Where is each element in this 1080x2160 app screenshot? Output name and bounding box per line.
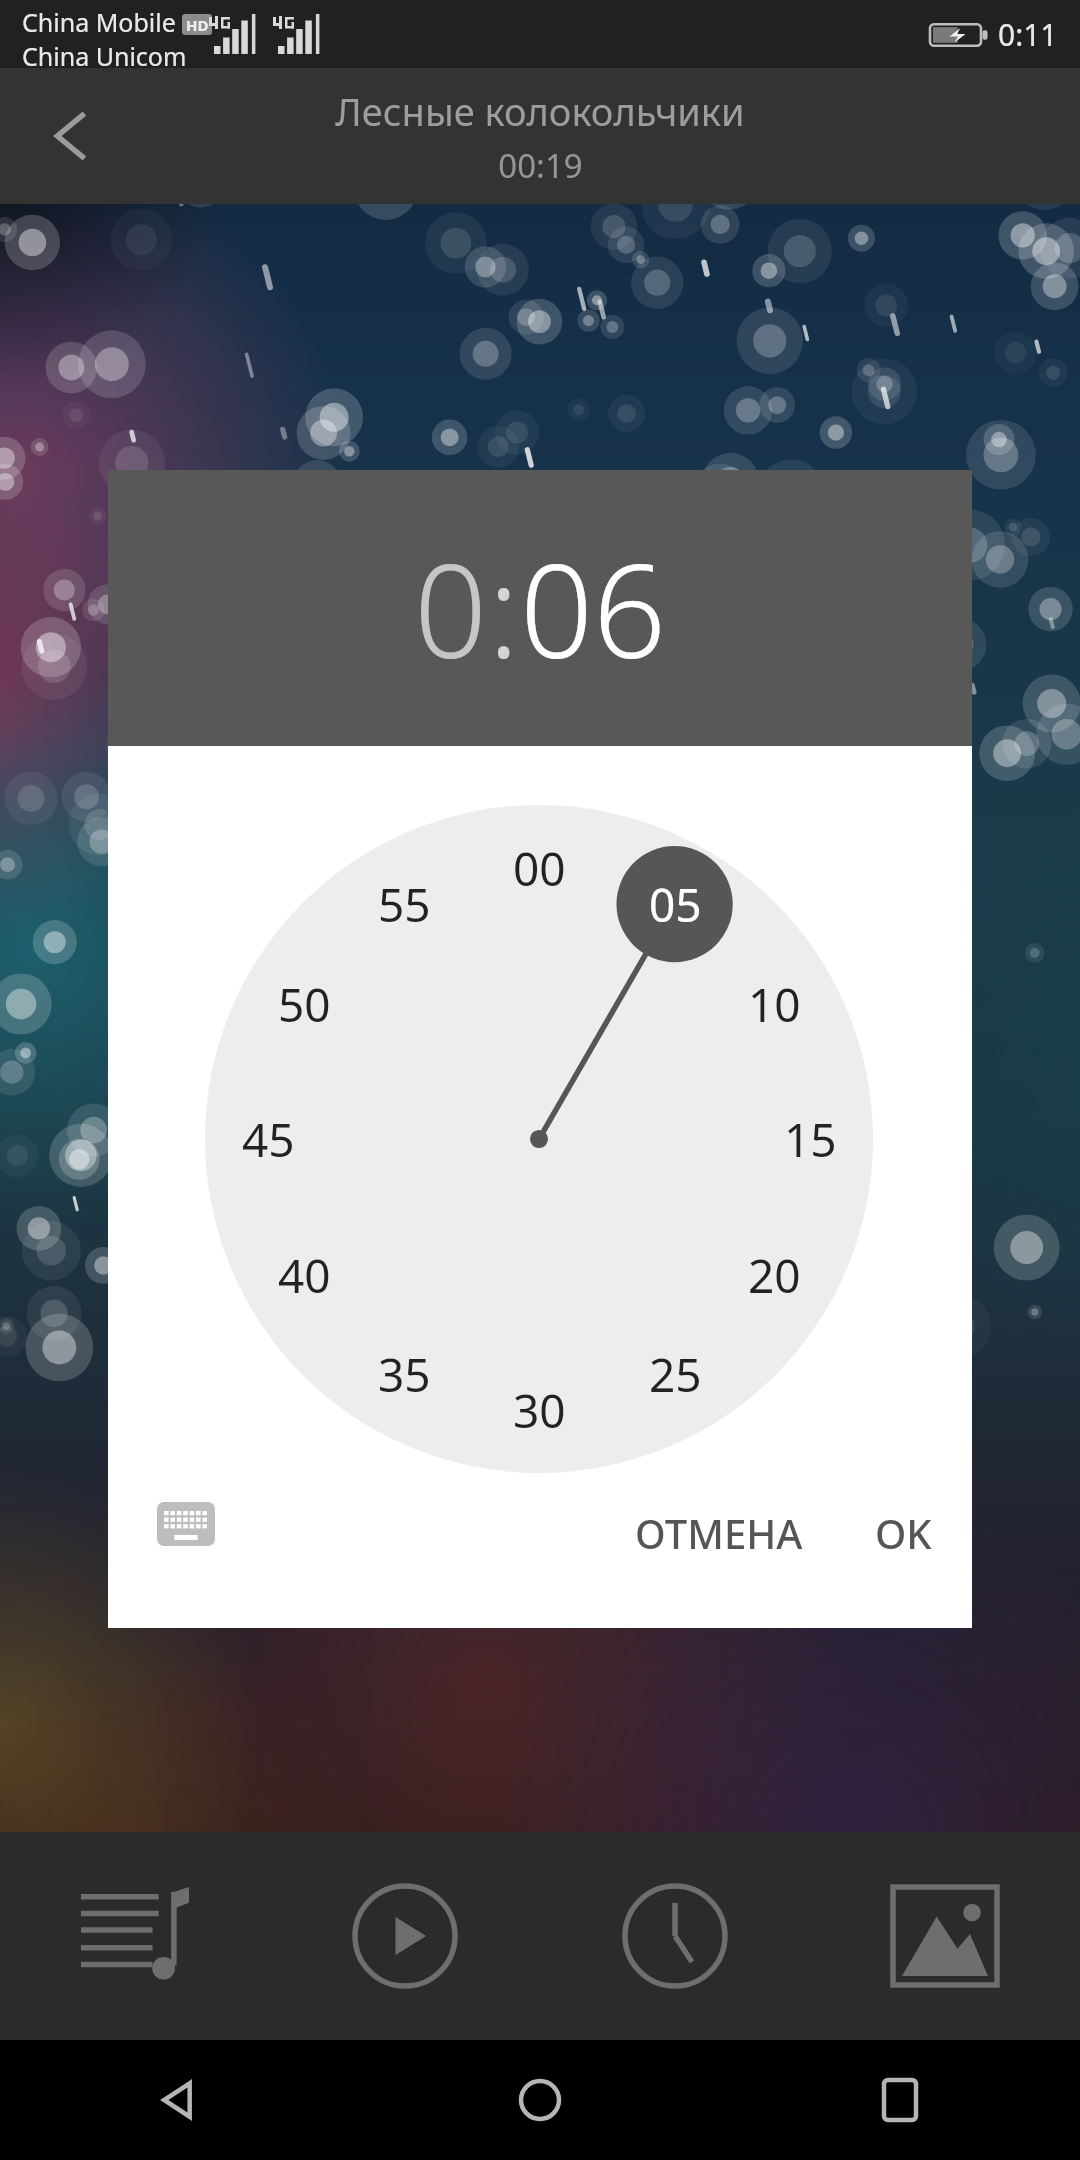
staticText: 0 [414,521,488,695]
button[interactable]: 30 [494,1374,584,1446]
button[interactable]: ОТМЕНА [609,1486,829,1580]
staticText: 10 [748,973,801,1036]
staticText: HD [186,15,209,35]
button[interactable]: 05 [630,868,720,940]
button[interactable]: Minute selector clock [205,805,873,1473]
button[interactable]: Artwork [810,1832,1080,2040]
button[interactable]: OK [849,1486,958,1580]
staticText: 15 [784,1108,837,1171]
button[interactable]: 55 [359,868,449,940]
staticText: 05 [649,873,702,936]
button[interactable]: 10 [729,968,819,1040]
button[interactable]: Back [18,81,128,191]
button[interactable]: 06 [520,521,667,695]
staticText: 20 [748,1244,801,1307]
button[interactable]: Recent apps [720,2040,1080,2160]
button[interactable]: 00 [494,832,584,904]
staticText: 40 [278,1244,331,1307]
button[interactable]: Back [0,2040,360,2160]
staticText: 35 [378,1343,431,1406]
staticText: 45 [242,1108,295,1171]
button[interactable]: Switch to text input [136,1474,236,1574]
button[interactable]: Home [360,2040,720,2160]
button[interactable]: 40 [259,1239,349,1311]
staticText: 06 [520,521,667,695]
button[interactable]: 15 [765,1103,855,1175]
button[interactable]: 0 [414,521,488,695]
button[interactable]: 35 [359,1338,449,1410]
button[interactable]: Playlist [0,1832,270,2040]
button[interactable]: 25 [630,1338,720,1410]
staticText: OK [875,1506,932,1560]
staticText: China Mobile [22,5,176,39]
staticText: 0:11 [998,14,1058,55]
staticText: 00 [513,837,566,900]
staticText: China Unicom [22,39,187,73]
button[interactable]: Timer [540,1832,810,2040]
staticText: ОТМЕНА [635,1506,803,1560]
button[interactable]: 45 [223,1103,313,1175]
button[interactable]: 50 [259,968,349,1040]
staticText: 55 [378,873,431,936]
button[interactable]: Play [270,1832,540,2040]
staticText: 25 [649,1343,702,1406]
staticText: 30 [513,1379,566,1442]
button[interactable]: 20 [729,1239,819,1311]
staticText: Лесные колокольчики [335,85,745,137]
staticText: 00:19 [498,143,583,188]
staticText: : [488,521,520,695]
staticText: 50 [278,973,331,1036]
